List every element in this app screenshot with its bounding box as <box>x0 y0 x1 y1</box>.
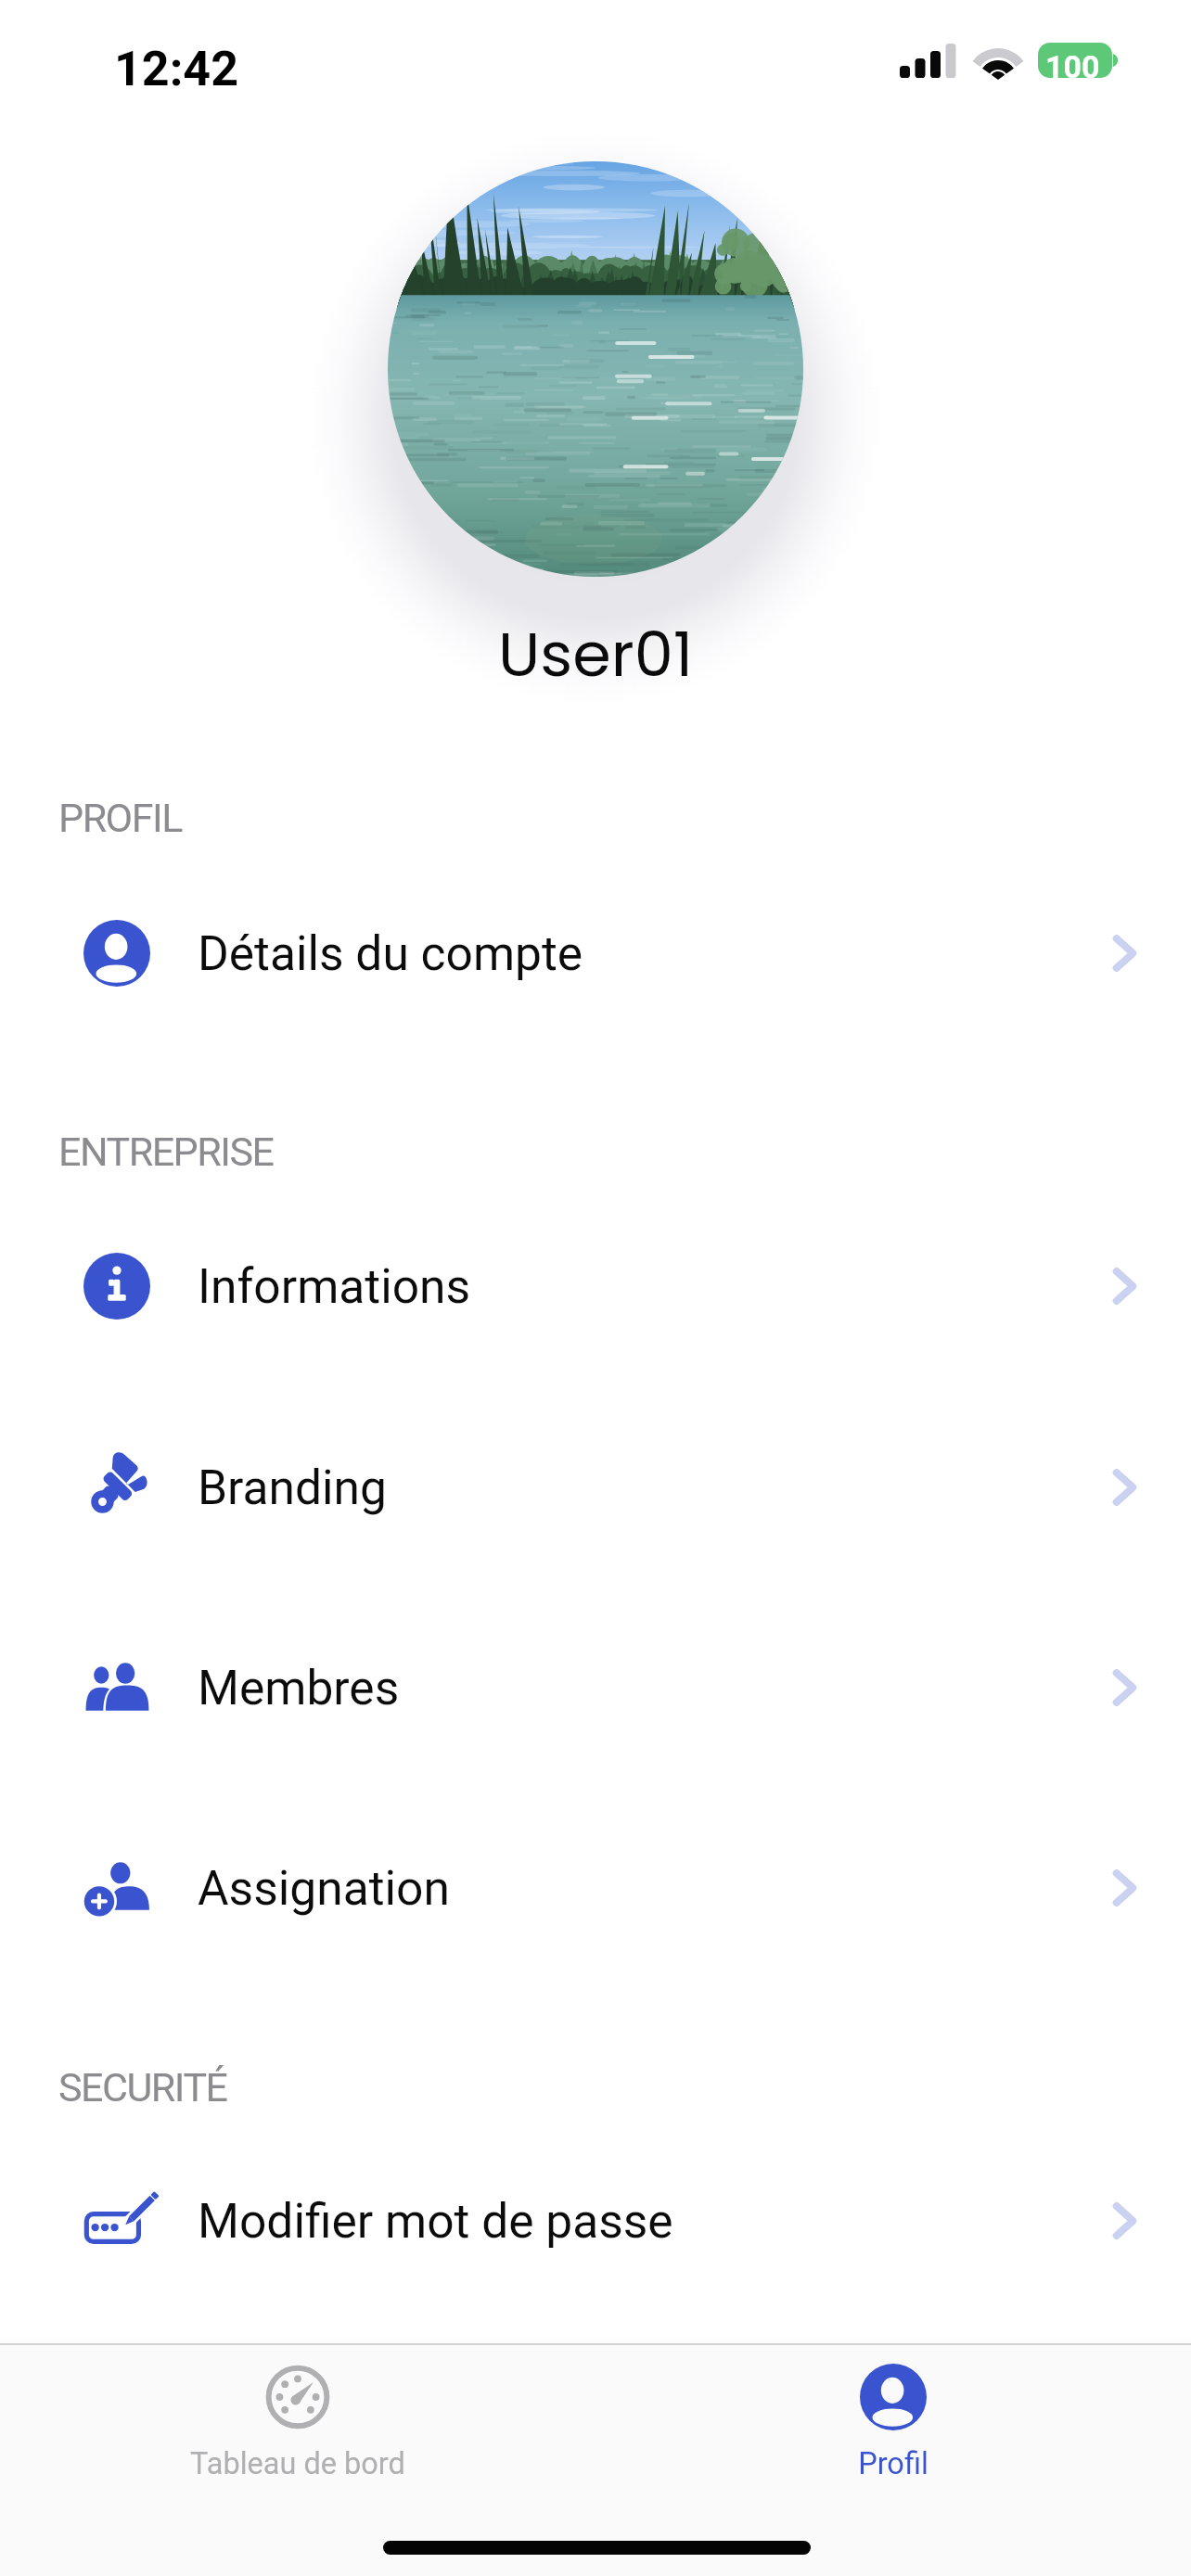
button[interactable]: Assignation <box>0 1788 1191 1988</box>
staticText: SECURITÉ <box>58 2064 227 2111</box>
button[interactable]: Informations <box>0 1186 1191 1386</box>
staticText: User01 <box>498 611 694 698</box>
staticText: ENTREPRISE <box>58 1129 274 1175</box>
staticText: Branding <box>198 1460 387 1515</box>
button[interactable]: Tableau de bord <box>0 2345 595 2512</box>
button[interactable]: Membres <box>0 1588 1191 1788</box>
staticText: 100 <box>1045 48 1100 85</box>
staticText: Informations <box>198 1258 471 1314</box>
staticText: Tableau de bord <box>190 2446 405 2481</box>
staticText: Modifier mot de passe <box>198 2193 673 2249</box>
staticText: Profil <box>858 2446 928 2481</box>
staticText: PROFIL <box>58 795 182 841</box>
button[interactable]: Profil <box>595 2345 1191 2512</box>
staticText: Détails du compte <box>198 925 583 981</box>
button[interactable]: Modifier mot de passe <box>0 2121 1191 2321</box>
button[interactable]: Branding <box>0 1387 1191 1588</box>
staticText: Membres <box>198 1660 400 1715</box>
staticText: 12:42 <box>114 41 239 97</box>
button[interactable]: Détails du compte <box>0 853 1191 1053</box>
staticText: Assignation <box>198 1860 450 1916</box>
